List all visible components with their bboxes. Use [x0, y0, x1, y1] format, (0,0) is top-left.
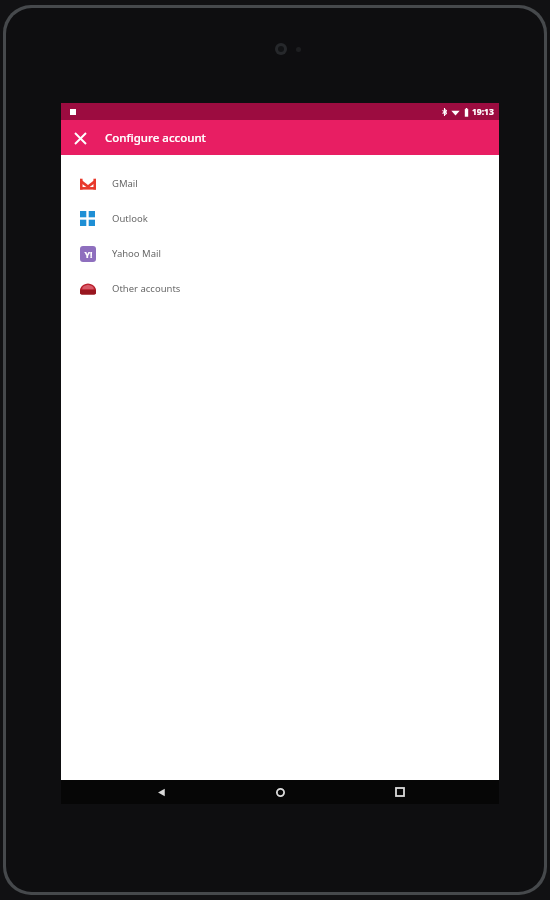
button[interactable]: GMail [61, 166, 499, 201]
staticText: Configure account [105, 130, 207, 146]
button[interactable]: Home [221, 780, 340, 804]
button[interactable]: Back [101, 780, 221, 804]
button[interactable]: Y! [61, 236, 499, 271]
staticText: Other accounts [112, 282, 181, 295]
staticText: GMail [112, 177, 138, 190]
staticText: 19:13 [472, 106, 494, 118]
button[interactable]: Recents [340, 780, 459, 804]
button[interactable]: Outlook [61, 201, 499, 236]
staticText: Outlook [112, 212, 148, 225]
staticText: Yahoo Mail [112, 247, 161, 260]
button[interactable]: Close [65, 123, 95, 153]
button[interactable]: Other accounts [61, 271, 499, 306]
staticText: Y! [84, 248, 93, 260]
